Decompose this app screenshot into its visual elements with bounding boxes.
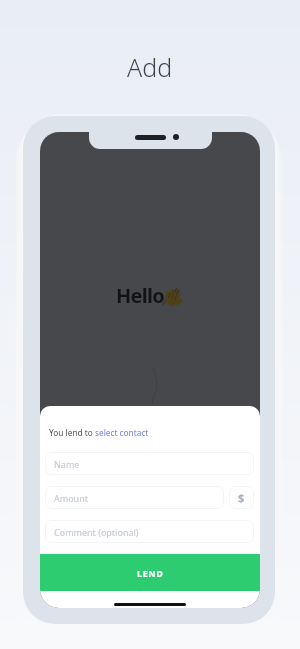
staticText: Comment (optional) [54, 526, 139, 538]
staticText: LEND [137, 567, 164, 579]
staticText: Amount [54, 492, 88, 504]
staticText: Add [127, 50, 173, 84]
button[interactable]: LEND [40, 554, 260, 591]
button[interactable]: Amount [45, 486, 224, 509]
staticText: Tap on the button to add new debt [113, 468, 190, 491]
staticText: $ [238, 490, 245, 505]
button[interactable]: Comment (optional) [45, 520, 254, 543]
button[interactable]: You lend to [49, 423, 149, 441]
staticText: You lend to [49, 427, 95, 438]
staticText: Hello [116, 282, 165, 309]
button[interactable]: Name [45, 452, 254, 475]
staticText: Name [54, 458, 80, 470]
staticText: select contact [95, 427, 149, 438]
button[interactable]: Currency [229, 486, 254, 509]
